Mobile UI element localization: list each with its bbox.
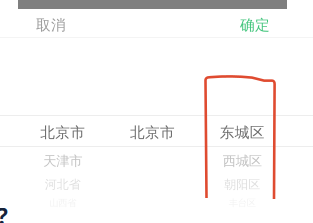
staticText: 北京市 [130, 123, 175, 141]
button[interactable]: 确定 [224, 11, 313, 39]
button[interactable]: 天津市 [18, 148, 108, 174]
staticText: 东城区 [220, 123, 265, 141]
staticText: 天津市 [43, 153, 82, 169]
staticText: 西城区 [223, 153, 262, 169]
staticText: 朝阳区 [224, 177, 260, 192]
button[interactable]: 北京市 [18, 117, 108, 148]
staticText: 取消 [36, 16, 66, 34]
button[interactable]: 东城区 [197, 117, 287, 148]
staticText: ? [0, 201, 8, 223]
button[interactable]: 西城区 [197, 148, 287, 174]
staticText: 北京市 [40, 123, 85, 141]
staticText: 丰台区 [229, 197, 256, 209]
staticText: 河北省 [45, 177, 81, 192]
staticText: 山西省 [49, 197, 76, 209]
button[interactable]: 河北省 [18, 174, 108, 195]
button[interactable]: 丰台区 [197, 195, 287, 211]
button[interactable]: 北京市 [108, 117, 197, 148]
button[interactable]: 朝阳区 [197, 174, 287, 195]
staticText: 确定 [240, 16, 270, 34]
button[interactable]: 取消 [0, 11, 82, 39]
